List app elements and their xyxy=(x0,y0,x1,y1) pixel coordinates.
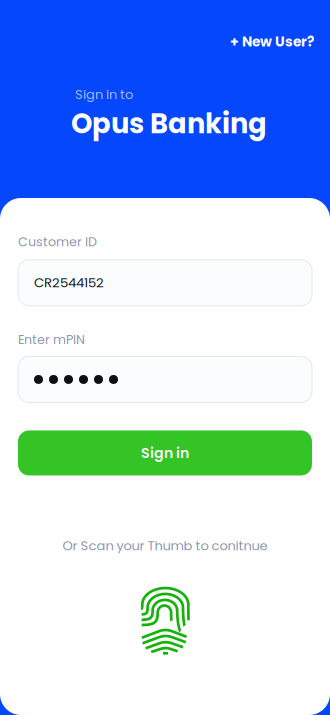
button[interactable]: Scan fingerprint to sign in xyxy=(18,587,312,655)
button[interactable]: Sign in xyxy=(18,430,312,475)
staticText: Sign in xyxy=(141,443,189,463)
staticText: CR2544152 xyxy=(34,273,104,292)
staticText: Sign in to xyxy=(75,85,133,103)
staticText: Enter mPIN xyxy=(18,331,85,348)
staticText: Opus Banking xyxy=(71,104,267,143)
staticText: + New User? xyxy=(230,32,314,51)
button[interactable]: + New User? xyxy=(224,27,320,56)
staticText: Or Scan your Thumb to conitnue xyxy=(62,536,267,555)
staticText: Customer ID xyxy=(18,233,97,251)
